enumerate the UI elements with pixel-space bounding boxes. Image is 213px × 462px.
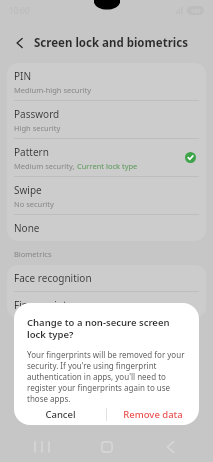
button[interactable]: None [7,215,206,241]
staticText: Password [14,107,60,121]
staticText: 100 [191,7,201,14]
button[interactable]: Pattern [7,139,206,176]
button[interactable]: Back [8,31,32,55]
staticText: Medium security, [14,161,77,171]
button[interactable]: Swipe [7,177,206,214]
staticText: Cancel [45,408,76,421]
button[interactable]: PIN [7,63,206,100]
staticText: Remove data [123,408,183,421]
staticText: Fingerprints [14,298,72,312]
staticText: 10:00 [9,5,30,16]
staticText: PIN [14,69,32,83]
staticText: Screen lock and biometrics [34,35,188,51]
staticText: Your fingerprints will be removed for yo… [27,349,186,404]
staticText: Medium-high security [14,85,92,95]
button[interactable]: Remove data [107,404,199,425]
staticText: Face recognition [14,271,92,285]
staticText: Pattern [14,145,49,159]
staticText: None [14,221,40,235]
staticText: Swipe [14,183,42,197]
staticText: Change to a non-secure screen lock type? [27,316,186,341]
button[interactable]: Home [85,432,129,462]
button[interactable]: Password [7,101,206,138]
staticText: High security [14,123,61,133]
button[interactable]: Face recognition [7,265,206,291]
button[interactable]: Cancel [14,404,106,425]
staticText: No security [14,199,54,209]
button[interactable]: Fingerprints [7,292,206,318]
staticText: Biometrics [14,249,52,259]
staticText: Current lock type [77,161,138,171]
